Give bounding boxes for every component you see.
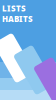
staticText: HABITS — [2, 14, 33, 24]
staticText: LISTS — [2, 3, 26, 14]
